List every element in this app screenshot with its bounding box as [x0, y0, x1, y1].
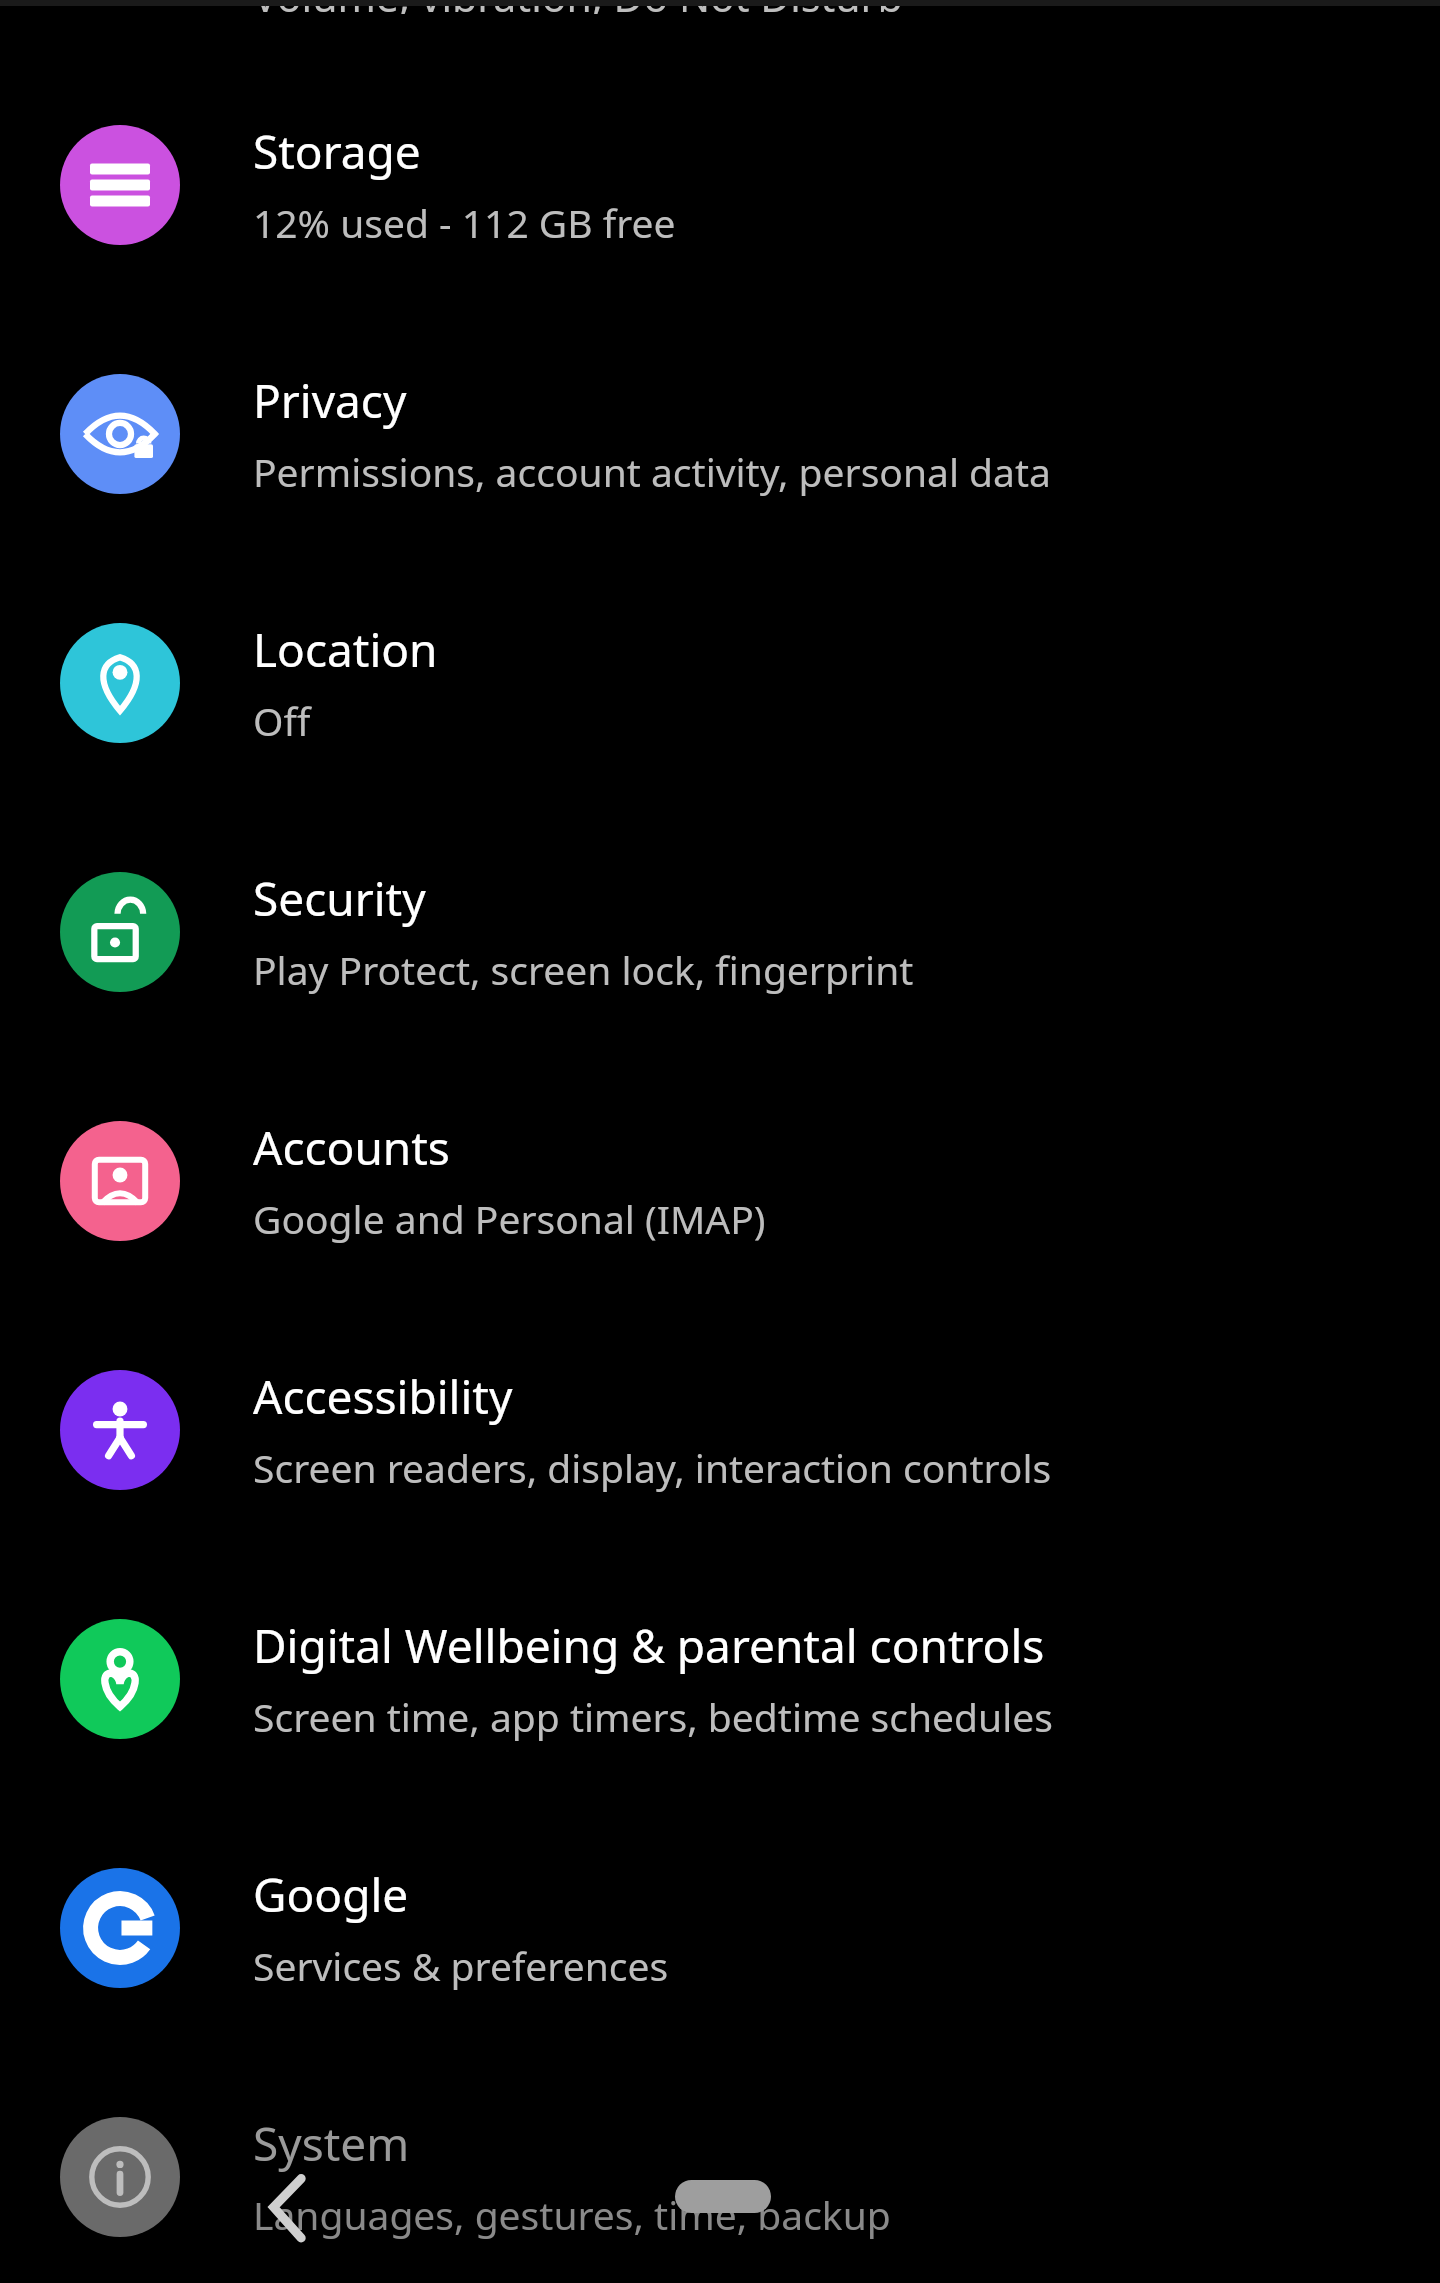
staticText: Screen time, app timers, bedtime schedul…: [253, 1690, 1053, 1743]
staticText: System: [253, 2112, 410, 2175]
staticText: Storage: [253, 120, 421, 183]
staticText: Google and Personal (IMAP): [253, 1192, 766, 1245]
staticText: Services & preferences: [253, 1939, 669, 1992]
staticText: 12% used - 112 GB free: [253, 196, 676, 249]
button[interactable]: Security: [0, 807, 1440, 1056]
staticText: Google: [253, 1863, 409, 1926]
staticText: Languages, gestures, time, backup: [253, 2188, 891, 2241]
staticText: Off: [253, 694, 311, 747]
staticText: Digital Wellbeing & parental controls: [253, 1614, 1045, 1677]
staticText: Privacy: [253, 369, 407, 432]
button[interactable]: Home: [675, 2180, 771, 2213]
staticText: Accounts: [253, 1116, 450, 1179]
staticText: Screen readers, display, interaction con…: [253, 1441, 1052, 1494]
button[interactable]: Digital Wellbeing & parental controls: [0, 1554, 1440, 1803]
button[interactable]: Google: [0, 1803, 1440, 2052]
staticText: Permissions, account activity, personal …: [253, 445, 1051, 498]
staticText: Location: [253, 618, 438, 681]
button[interactable]: Location: [0, 558, 1440, 807]
button[interactable]: Accounts: [0, 1056, 1440, 1305]
staticText: Security: [253, 867, 426, 930]
button[interactable]: Storage: [0, 60, 1440, 309]
staticText: Volume, vibration, Do Not Disturb: [253, 0, 903, 14]
button[interactable]: Back: [258, 2150, 318, 2260]
staticText: Play Protect, screen lock, fingerprint: [253, 943, 914, 996]
staticText: Accessibility: [253, 1365, 513, 1428]
button[interactable]: Accessibility: [0, 1305, 1440, 1554]
button[interactable]: System: [0, 2052, 1440, 2283]
button[interactable]: Privacy: [0, 309, 1440, 558]
